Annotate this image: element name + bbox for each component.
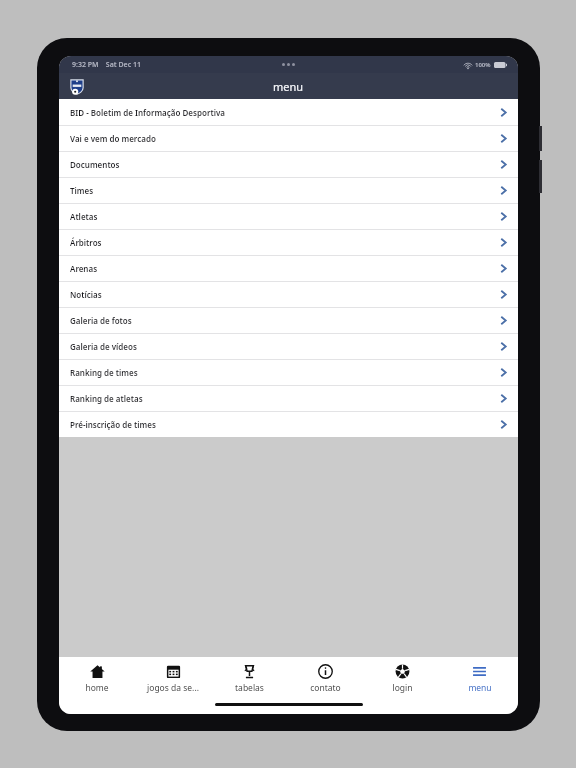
button[interactable]: tabelas (211, 657, 287, 701)
staticText: Ranking de times (70, 367, 500, 378)
staticText: contato (310, 682, 341, 694)
staticText: Ranking de atletas (70, 393, 500, 404)
button[interactable]: BID - Boletim de Informação Desportiva (59, 99, 518, 125)
button[interactable]: Arenas (59, 255, 518, 281)
staticText: Vai e vem do mercado (70, 133, 500, 144)
staticText: Times (70, 185, 500, 196)
button[interactable]: App logo (67, 76, 87, 96)
staticText: Documentos (70, 159, 500, 170)
staticText: Pré-inscrição de times (70, 419, 500, 430)
button[interactable]: Notícias (59, 281, 518, 307)
button[interactable]: jogos da se... (135, 657, 211, 701)
button[interactable]: Ranking de times (59, 359, 518, 385)
button[interactable]: Pré-inscrição de times (59, 411, 518, 437)
staticText: jogos da se... (147, 682, 199, 694)
staticText: Galeria de vídeos (70, 341, 500, 352)
staticText: Galeria de fotos (70, 315, 500, 326)
staticText: Atletas (70, 211, 500, 222)
staticText: BID - Boletim de Informação Desportiva (70, 107, 500, 118)
button[interactable]: home (59, 657, 135, 701)
button[interactable]: Árbitros (59, 229, 518, 255)
button[interactable]: login (364, 657, 441, 701)
staticText: menu (273, 79, 304, 94)
button[interactable]: Documentos (59, 151, 518, 177)
staticText: 100% (475, 61, 491, 69)
staticText: Árbitros (70, 237, 500, 248)
staticText: Arenas (70, 263, 500, 274)
button[interactable]: Atletas (59, 203, 518, 229)
staticText: Notícias (70, 289, 500, 300)
button[interactable]: Vai e vem do mercado (59, 125, 518, 151)
staticText: 9:32 PM Sat Dec 11 (72, 60, 142, 70)
button[interactable]: contato (287, 657, 364, 701)
staticText: login (392, 682, 413, 694)
staticText: menu (468, 682, 492, 694)
button[interactable]: Galeria de vídeos (59, 333, 518, 359)
button[interactable]: Times (59, 177, 518, 203)
button[interactable]: Ranking de atletas (59, 385, 518, 411)
button[interactable]: menu (441, 657, 518, 701)
button[interactable]: Galeria de fotos (59, 307, 518, 333)
staticText: tabelas (235, 682, 264, 694)
staticText: home (85, 682, 109, 694)
